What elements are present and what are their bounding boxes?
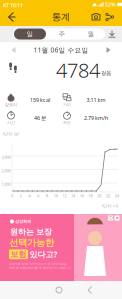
button[interactable]: 삼성화재	[0, 214, 122, 281]
staticText: 2.79 km/h	[84, 114, 108, 122]
staticText: ✕	[115, 216, 118, 220]
staticText: 걸음	[101, 70, 111, 76]
button[interactable]: Share	[102, 8, 118, 26]
staticText: 8	[46, 193, 48, 198]
staticText: 선택가능한	[9, 237, 54, 248]
button[interactable]: Back	[1, 8, 21, 26]
staticText: 3,000	[1, 154, 10, 160]
button[interactable]: 일	[14, 28, 46, 39]
staticText: 칼로리	[5, 102, 17, 107]
button[interactable]: Ad info	[108, 215, 113, 220]
button[interactable]: Camera	[88, 8, 104, 26]
staticText: 16	[80, 193, 84, 198]
staticText: 11월 06일 수요일	[33, 46, 88, 54]
staticText: KT 10:11	[3, 2, 23, 9]
staticText: 주	[58, 30, 65, 38]
staticText: 20	[97, 193, 101, 198]
staticText: 보험	[10, 249, 26, 259]
staticText: 12	[62, 193, 66, 198]
staticText: 159 kcal	[30, 96, 50, 104]
staticText: 24	[115, 193, 119, 198]
staticText: 22	[106, 193, 110, 198]
staticText: 4784	[56, 57, 100, 83]
staticText: 삼성화재	[15, 219, 31, 224]
staticText: 52%	[105, 1, 116, 8]
staticText: 18	[89, 193, 93, 198]
staticText: 4	[28, 193, 30, 198]
button[interactable]: Close ad	[114, 215, 119, 220]
staticText: 46 분	[34, 114, 46, 122]
staticText: 2,000	[1, 168, 10, 173]
button[interactable]: Next day	[101, 44, 115, 56]
button[interactable]: 주	[47, 28, 77, 39]
button[interactable]: 월	[76, 28, 106, 39]
staticText: 월	[87, 30, 94, 38]
staticText: 보장내용·보험기간·가입나이 등 상세내용은	[9, 262, 67, 265]
staticText: 일	[26, 30, 33, 38]
button[interactable]: Previous day	[7, 44, 21, 56]
staticText: 2	[20, 193, 22, 198]
button[interactable]: Back	[83, 283, 97, 297]
staticText: 약관 및 상품설명서를 꼭 확인하시기 바랍니다.	[9, 266, 72, 269]
staticText: 시간	[7, 120, 15, 125]
staticText: 14	[71, 193, 75, 198]
staticText: 속도	[63, 120, 71, 125]
staticText: 원하는 보장	[10, 227, 52, 237]
staticText: (단위: 보)	[3, 131, 19, 136]
staticText: 0	[11, 193, 13, 198]
staticText: 10	[54, 193, 58, 198]
staticText: (단위: 시)	[102, 203, 118, 208]
staticText: 1,000	[1, 181, 10, 187]
staticText: 거리	[63, 102, 71, 107]
staticText: ⓘ	[108, 215, 112, 220]
button[interactable]: Home	[52, 283, 66, 297]
staticText: 통계	[52, 11, 70, 23]
button[interactable]: Download	[105, 27, 119, 41]
staticText: 있다고?	[29, 249, 57, 260]
staticText: 3.11 km	[86, 96, 105, 104]
staticText: 6	[37, 193, 39, 198]
